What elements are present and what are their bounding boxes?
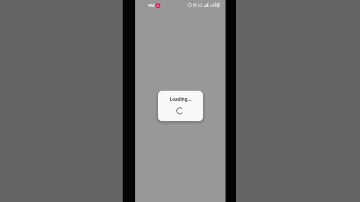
button[interactable]: Loading overlay (135, 0, 225, 202)
button[interactable]: Loading... (158, 91, 203, 121)
